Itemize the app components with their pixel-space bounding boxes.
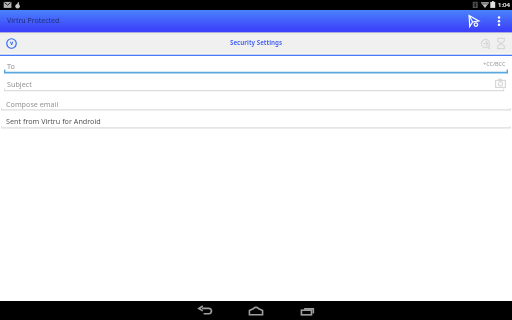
- staticText: Sent from Virtru for Android: [6, 116, 101, 126]
- staticText: To: [7, 61, 15, 71]
- staticText: Compose email: [6, 99, 59, 109]
- staticText: Subject: [7, 79, 32, 89]
- button[interactable]: Home: [237, 301, 275, 320]
- button[interactable]: Back: [186, 301, 224, 320]
- button[interactable]: Disable forwarding: [477, 35, 494, 52]
- button[interactable]: Compose email: [0, 90, 512, 109]
- button[interactable]: More options: [489, 10, 509, 32]
- button[interactable]: Attach photo: [494, 76, 507, 89]
- button[interactable]: Security Settings: [230, 38, 283, 46]
- button[interactable]: To: [0, 55, 512, 72]
- button[interactable]: Send secure email: [461, 10, 485, 32]
- button[interactable]: Recent apps: [289, 301, 327, 320]
- staticText: 1:04: [498, 1, 510, 9]
- staticText: Virtru Protected: [7, 16, 60, 26]
- staticText: +CC/BCC: [483, 60, 506, 67]
- button[interactable]: Message expiration: [492, 35, 509, 52]
- button[interactable]: Subject: [0, 72, 512, 90]
- button[interactable]: Virtru protection: [3, 35, 20, 52]
- button[interactable]: Sent from Virtru for Android: [0, 109, 512, 128]
